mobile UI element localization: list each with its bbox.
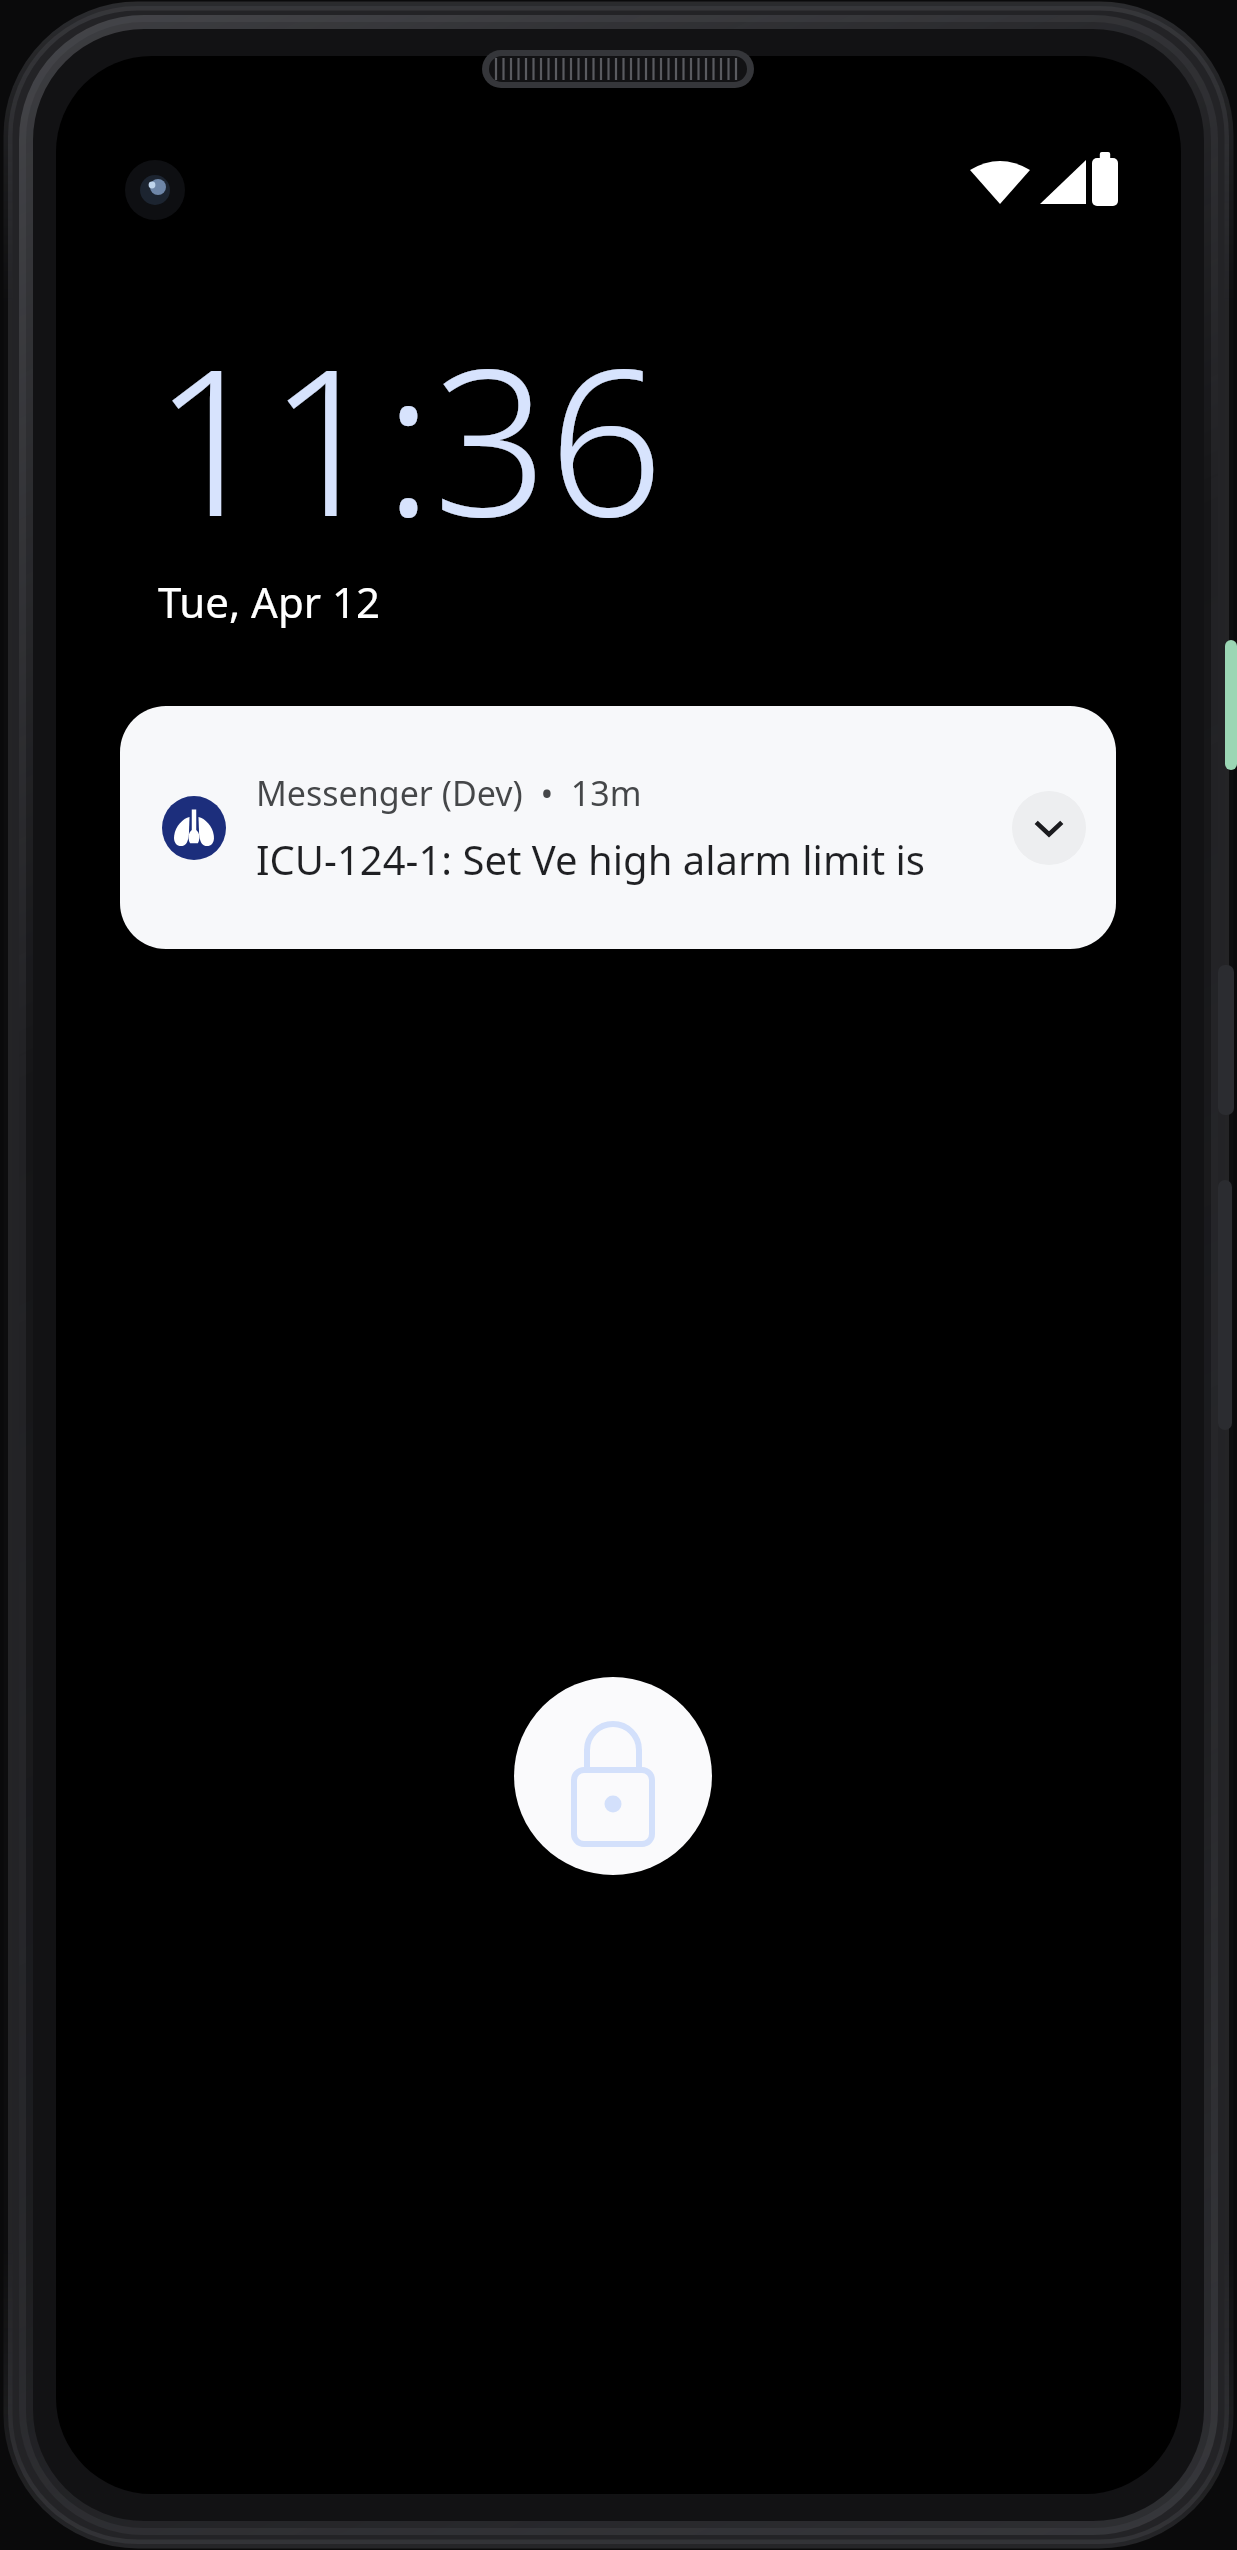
button[interactable]: 11:36 xyxy=(153,300,664,575)
staticText: 11:36 xyxy=(153,300,664,575)
staticText: ICU-124-1: Set Ve high alarm limit is no… xyxy=(256,832,998,886)
button[interactable]: Messenger (Dev) • 13m xyxy=(120,706,1116,949)
button[interactable]: Expand notification xyxy=(1012,791,1086,865)
staticText: Tue, Apr 12 xyxy=(158,573,381,630)
button[interactable]: Tue, Apr 12 xyxy=(158,573,381,630)
button[interactable]: Unlock xyxy=(514,1677,712,1875)
staticText: Messenger (Dev) • 13m xyxy=(256,770,642,816)
